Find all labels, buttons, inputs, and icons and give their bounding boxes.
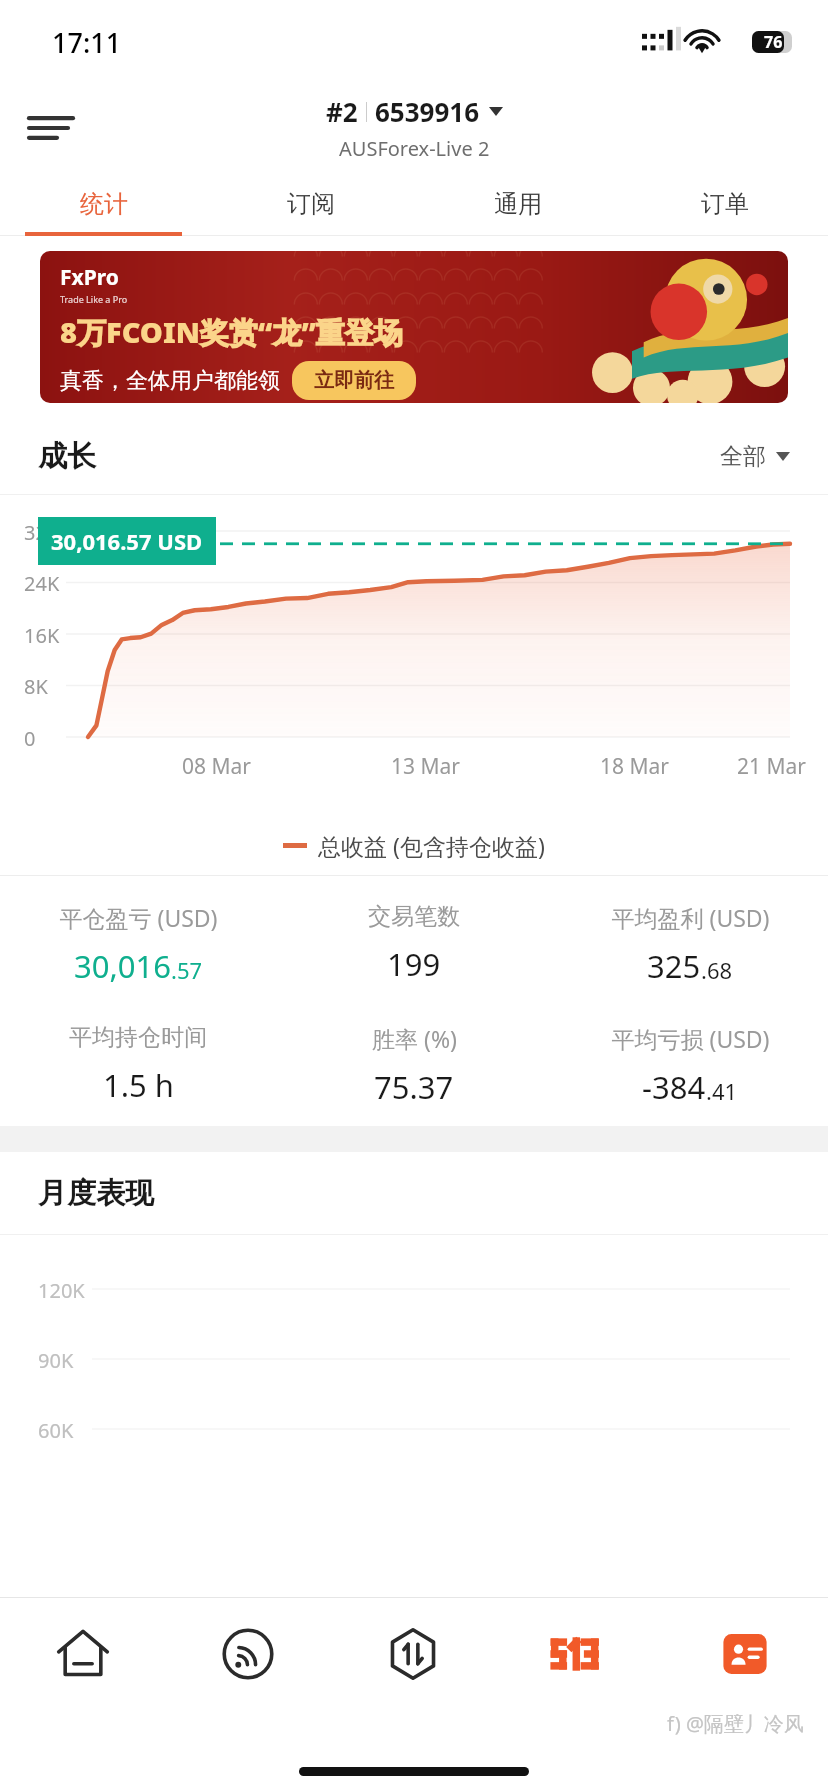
staticText: 8K [24,673,48,700]
staticText: 75.37 [374,1066,454,1108]
staticText: 统计 [80,189,128,219]
staticText: -384 [642,1066,706,1108]
button[interactable]: 统计 [0,172,207,236]
staticText: f) @隔壁丿冷风 [667,1710,804,1737]
staticText: FxPro [60,263,119,292]
staticText: 胜率 (%) [372,1023,457,1054]
staticText: 立即前往 [314,368,394,393]
staticText: 真香，全体用户都能领 [60,367,280,395]
staticText: #2 [326,94,358,129]
staticText: 17:11 [52,24,122,61]
staticText: 平均盈利 (USD) [611,902,770,933]
staticText: 30,016.57 USD [51,526,203,556]
staticText: 平均持仓时间 [69,1023,207,1052]
button[interactable]: 订阅 [207,172,414,236]
staticText: 120K [38,1277,85,1304]
staticText: 通用 [494,189,542,219]
staticText: 平均亏损 (USD) [611,1023,770,1054]
button[interactable]: Home [0,1598,165,1710]
staticText: .57 [171,955,203,985]
staticText: 交易笔数 [368,902,460,931]
staticText: 订单 [701,189,749,219]
button[interactable]: Trade [330,1598,496,1710]
staticText: 总收益 (包含持仓收益) [318,830,545,861]
button[interactable]: 立即前往 [292,361,416,400]
staticText: 76 [764,31,783,53]
staticText: 199 [387,943,441,985]
staticText: 32K [24,519,60,546]
staticText: .68 [701,955,733,985]
staticText: 325 [647,945,701,987]
staticText: 成长 [38,438,96,475]
button[interactable]: Profile [662,1598,828,1710]
staticText: 08 Mar [182,752,251,781]
button[interactable]: Menu [22,99,80,157]
staticText: 13 Mar [391,752,460,781]
staticText: 16K [24,622,60,649]
button[interactable]: Signals [165,1598,330,1710]
staticText: 6539916 [375,94,480,129]
staticText: 0 [24,725,36,752]
staticText: AUSForex-Live 2 [339,135,490,162]
staticText: 全部 [720,442,766,471]
staticText: 8万FCOIN奖赏“龙”重登场 [60,312,403,352]
staticText: 订阅 [287,189,335,219]
staticText: .41 [706,1076,738,1106]
staticText: 90K [38,1347,74,1374]
staticText: Trade Like a Pro [60,293,128,305]
staticText: 平仓盈亏 (USD) [59,902,218,933]
staticText: 月度表现 [38,1175,154,1212]
staticText: 1.5 h [103,1064,174,1106]
button[interactable]: 全部 [720,442,790,471]
button[interactable]: #2 [326,94,503,162]
button[interactable]: 订单 [621,172,828,236]
button[interactable]: 通用 [414,172,621,236]
staticText: 60K [38,1417,74,1444]
staticText: 30,016 [74,945,171,987]
button[interactable]: FxPro [40,251,788,403]
staticText: 18 Mar [600,752,669,781]
button[interactable]: S13 [496,1598,662,1710]
staticText: 24K [24,570,60,597]
staticText: 21 Mar [737,752,806,781]
